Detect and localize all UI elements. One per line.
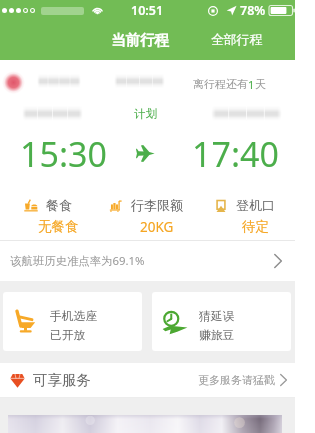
staticText: 20KG bbox=[140, 218, 174, 235]
button[interactable]: 该航班历史准点率为69.1% bbox=[0, 241, 295, 281]
staticText: 该航班历史准点率为69.1% bbox=[10, 253, 145, 269]
staticText: 计划 bbox=[134, 107, 157, 121]
staticText: 手机选座 bbox=[50, 309, 98, 324]
staticText: 待定 bbox=[242, 218, 269, 235]
button[interactable]: 猜延误 bbox=[152, 292, 291, 351]
button[interactable]: 手机选座 bbox=[3, 292, 142, 351]
button[interactable]: 当前行程 bbox=[105, 25, 175, 55]
staticText: 17:40 bbox=[192, 131, 279, 177]
staticText: 78% bbox=[240, 2, 266, 19]
staticText: 当前行程 bbox=[111, 31, 169, 49]
staticText: 全部行程 bbox=[211, 32, 263, 48]
staticText: 1 bbox=[248, 77, 255, 92]
staticText: 已开放 bbox=[50, 328, 86, 343]
staticText: 猜延误 bbox=[199, 309, 235, 324]
button[interactable] bbox=[8, 415, 282, 433]
staticText: 更多服务请猛戳 bbox=[198, 373, 275, 387]
staticText: 餐食 bbox=[46, 197, 72, 213]
button[interactable]: 行李限额 bbox=[99, 180, 197, 235]
staticText: 可享服务 bbox=[33, 371, 91, 389]
button[interactable]: 可享服务 bbox=[0, 363, 295, 397]
staticText: 赚旅豆 bbox=[199, 328, 235, 343]
staticText: 无餐食 bbox=[38, 218, 79, 235]
staticText: 15:30 bbox=[20, 131, 107, 177]
staticText: 10:51 bbox=[131, 2, 164, 19]
staticText: 行李限额 bbox=[131, 197, 183, 213]
button[interactable]: 餐食 bbox=[0, 180, 99, 235]
staticText: 登机口 bbox=[236, 197, 275, 213]
button[interactable]: 全部行程 bbox=[205, 26, 269, 54]
staticText: 离行程还有 bbox=[193, 77, 248, 91]
button[interactable]: 登机口 bbox=[197, 180, 295, 235]
staticText: 天 bbox=[255, 77, 266, 91]
